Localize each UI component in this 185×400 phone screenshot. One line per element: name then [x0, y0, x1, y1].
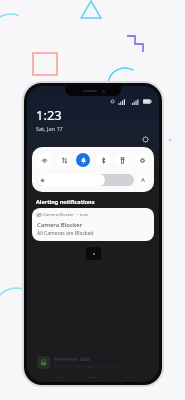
staticText: Alerting notifications	[36, 198, 95, 205]
staticText: Camera Blocker	[37, 221, 83, 229]
staticText: Camera Blocker	[43, 212, 75, 218]
button[interactable]: Flashlight	[115, 153, 129, 167]
staticText: Sat, Jan 17	[36, 125, 63, 132]
button[interactable]: Brightness	[37, 174, 134, 186]
button[interactable]: Auto brightness	[137, 174, 149, 186]
button[interactable]: Do not disturb	[76, 153, 90, 167]
button[interactable]: Wi-Fi	[37, 153, 51, 167]
staticText: All Cameras are Blocked	[37, 230, 94, 237]
staticText: 1:23	[36, 106, 62, 124]
button[interactable]: Camera Blocker	[32, 208, 154, 241]
staticText: Tap here to remove all the ads	[54, 363, 118, 369]
staticText: Remove ads	[54, 355, 90, 363]
button[interactable]: Settings	[141, 135, 150, 144]
button[interactable]: Remove ads	[37, 355, 149, 369]
button[interactable]: Bluetooth	[96, 153, 110, 167]
staticText: A	[141, 176, 145, 184]
button[interactable]: Mobile data	[57, 153, 71, 167]
staticText: • now	[77, 212, 88, 218]
button[interactable]: Auto rotate	[135, 153, 149, 167]
